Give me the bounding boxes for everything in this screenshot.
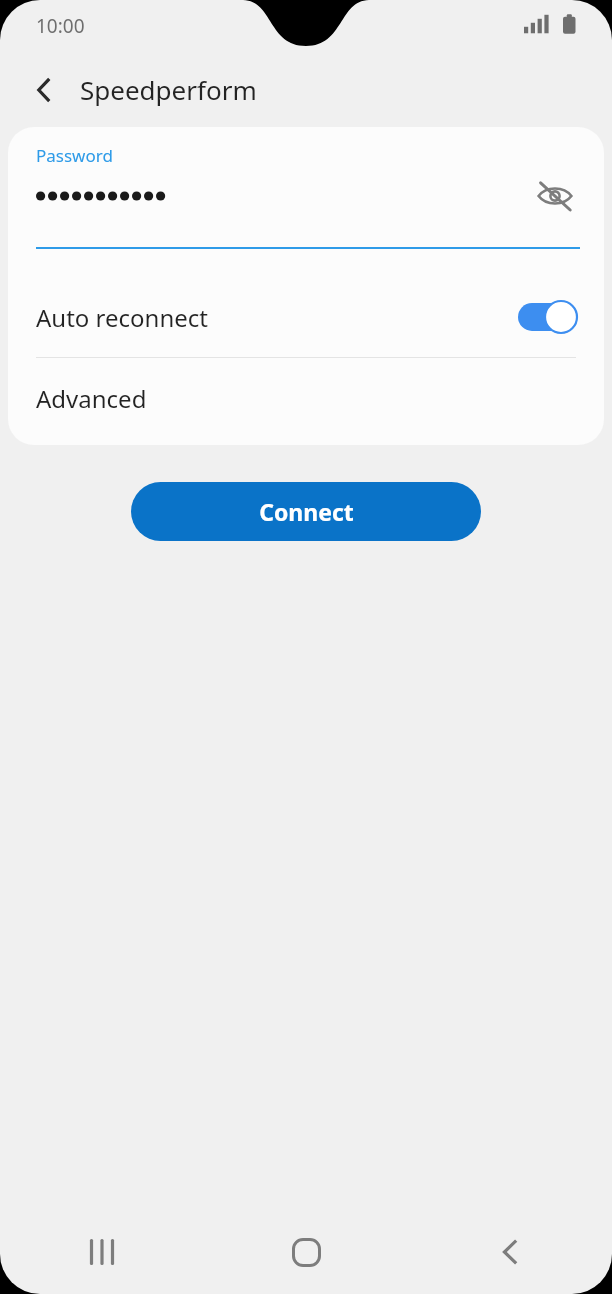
button[interactable]: Advanced <box>8 358 604 438</box>
staticText: Auto reconnect <box>36 301 518 334</box>
button[interactable]: Auto reconnect <box>8 277 604 357</box>
button[interactable]: Home <box>204 1210 408 1294</box>
button[interactable]: Hide password <box>528 169 582 223</box>
button[interactable]: Recents <box>0 1210 204 1294</box>
button[interactable]: Back <box>408 1210 612 1294</box>
staticText: Connect <box>259 496 354 527</box>
button[interactable]: Back <box>20 66 68 114</box>
staticText: Speedperform <box>80 72 257 107</box>
button[interactable]: Connect <box>131 482 481 541</box>
staticText: 10:00 <box>36 13 85 39</box>
staticText: Password <box>36 144 113 167</box>
staticText: Advanced <box>36 382 147 415</box>
button[interactable]: Password <box>8 127 604 249</box>
